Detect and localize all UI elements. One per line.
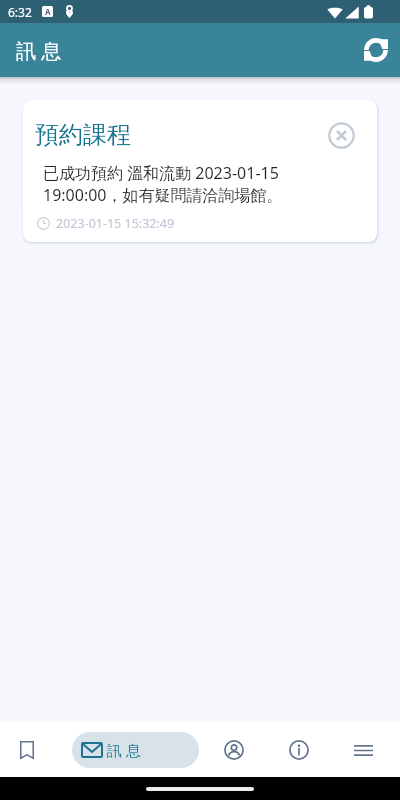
button[interactable]: Dismiss (325, 119, 357, 151)
staticText: 訊 息 (16, 37, 62, 64)
button[interactable]: 預約課程 (23, 100, 377, 242)
button[interactable]: 訊 息 (72, 732, 199, 768)
staticText: 2023-01-15 15:32:49 (56, 215, 175, 232)
staticText: 訊 息 (107, 740, 141, 760)
button[interactable]: Account (210, 726, 258, 774)
staticText: 預約課程 (35, 120, 131, 150)
staticText: 19:00:00，如有疑問請洽詢場館。 (43, 184, 283, 206)
button[interactable]: Refresh (355, 29, 397, 71)
button[interactable]: Bookmarks (3, 726, 51, 774)
button[interactable]: Menu (339, 726, 387, 774)
button[interactable]: Info (275, 726, 323, 774)
staticText: 已成功預約 溫和流動 2023-01-15 (43, 162, 279, 184)
staticText: 6:32 (8, 4, 32, 20)
staticText: A (45, 6, 51, 17)
